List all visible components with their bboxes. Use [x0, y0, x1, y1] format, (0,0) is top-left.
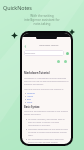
- staticText: For compatibility always put a blank lin…: [28, 138, 69, 144]
- button[interactable]: Voice: [64, 60, 67, 63]
- staticText: Here are some of the tools that support …: [24, 88, 64, 91]
- button[interactable]: Ghost: [24, 101, 33, 104]
- button[interactable]: Attach: [57, 60, 60, 63]
- staticText: These are the elements outlined in the o…: [24, 110, 69, 116]
- staticText: Notion: [27, 95, 34, 98]
- button[interactable]: Back: [22, 43, 71, 48]
- button[interactable]: Obsidian: [24, 92, 35, 95]
- staticText: To create a heading, add number signs in…: [28, 118, 69, 127]
- staticText: Markdown Tutorial: [24, 71, 50, 75]
- staticText: Markdown is a lightweight markup languag…: [24, 77, 69, 86]
- staticText: write/notes: [25, 52, 36, 55]
- button[interactable]: Bear: [24, 98, 32, 101]
- staticText: QuickNotes: [3, 4, 32, 11]
- staticText: Ghost: [27, 101, 33, 104]
- staticText: Basic Syntax: [24, 105, 40, 108]
- staticText: With the writing intelligence assistant …: [0, 14, 84, 26]
- button[interactable]: Send: [66, 52, 69, 55]
- staticText: Markdown applications do not agree on ho…: [28, 128, 69, 137]
- staticText: Markdown Tutorial: [39, 44, 59, 47]
- other: Back: [23, 44, 27, 48]
- staticText: Obsidian: [27, 92, 35, 95]
- staticText: Bear: [27, 98, 32, 101]
- button[interactable]: Notion: [24, 95, 34, 98]
- button[interactable]: write/notes: [24, 50, 64, 56]
